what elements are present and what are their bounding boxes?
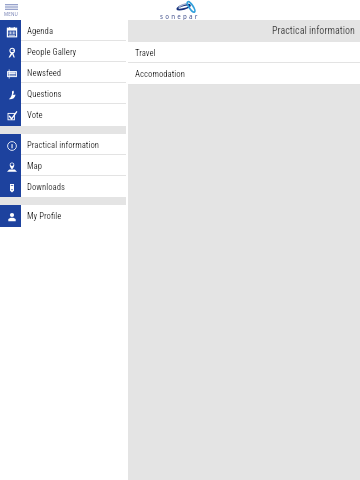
staticText: Map [27,161,43,171]
button[interactable]: Newsfeed [0,62,128,83]
button[interactable]: Agenda [0,20,128,41]
button[interactable]: People Gallery [0,41,128,62]
button[interactable]: Questions [0,83,128,104]
button[interactable]: Accomodation [128,63,360,85]
staticText: Travel [135,48,156,58]
button[interactable]: Vote [0,104,128,126]
staticText: Questions [27,89,62,99]
button[interactable]: My Profile [0,205,128,227]
staticText: People Gallery [27,47,77,57]
staticText: My Profile [27,211,62,221]
button[interactable]: Travel [128,42,360,63]
staticText: Accomodation [135,69,185,79]
staticText: Practical information [272,25,355,37]
staticText: MENU [4,11,19,17]
staticText: Agenda [27,26,54,36]
staticText: Practical information [27,140,99,150]
button[interactable]: Downloads [0,176,128,197]
button[interactable]: Map [0,155,128,176]
staticText: Downloads [27,182,65,192]
button[interactable]: Practical information [0,134,128,155]
staticText: sonepar [160,12,200,20]
staticText: Newsfeed [27,68,62,78]
staticText: Vote [27,110,43,120]
button[interactable]: Menu [4,4,19,17]
